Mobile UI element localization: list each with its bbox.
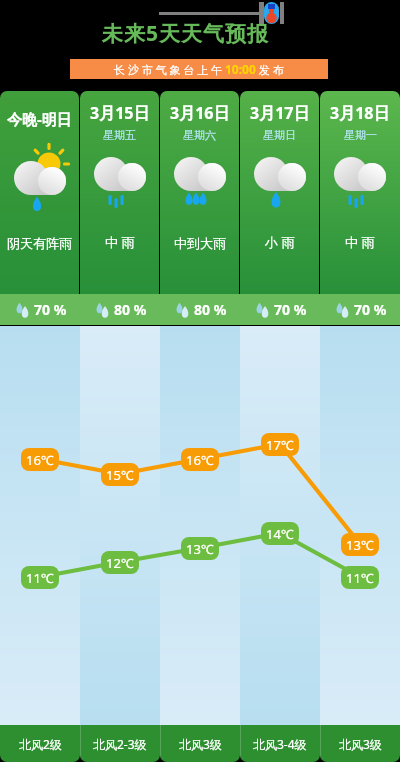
staticText: 3月15日 — [90, 102, 150, 124]
staticText: 3月16日 — [170, 102, 230, 124]
button[interactable]: 11℃ — [341, 566, 379, 589]
button[interactable]: 长 沙 市 气 象 台 上 午 — [70, 59, 328, 79]
button[interactable]: 17℃ — [261, 433, 299, 456]
button[interactable]: 今晚-明日 — [0, 91, 79, 294]
staticText: 70 % — [34, 300, 67, 319]
button[interactable]: 13℃ — [181, 537, 219, 560]
button[interactable]: 11℃ — [21, 566, 59, 589]
staticText: 北风2级 — [19, 736, 62, 752]
staticText: 10:00 — [225, 61, 256, 77]
staticText: 13℃ — [186, 540, 214, 558]
staticText: 中到大雨 — [174, 235, 226, 251]
staticText: 发 布 — [256, 62, 284, 77]
button[interactable]: 北风2-3级 — [80, 725, 160, 762]
button[interactable]: 80 % — [160, 294, 240, 325]
staticText: 中 雨 — [105, 233, 135, 251]
staticText: 中 雨 — [345, 233, 375, 251]
staticText: 今晚-明日 — [7, 109, 72, 129]
staticText: 70 % — [354, 300, 387, 319]
staticText: 北风3级 — [179, 736, 222, 752]
staticText: 14℃ — [266, 525, 294, 543]
button[interactable]: 12℃ — [101, 551, 139, 574]
button[interactable]: 北风2级 — [0, 725, 80, 762]
staticText: 3月17日 — [250, 102, 310, 124]
staticText: 80 % — [194, 300, 227, 319]
button[interactable]: 70 % — [0, 294, 80, 325]
staticText: 未来5天天气预报 — [102, 19, 270, 48]
button[interactable]: 15℃ — [101, 463, 139, 486]
button[interactable]: 13℃ — [341, 533, 379, 556]
staticText: 16℃ — [186, 451, 214, 469]
button[interactable]: 3月18日 — [320, 91, 400, 294]
button[interactable]: 3月15日 — [80, 91, 159, 294]
staticText: 星期一 — [344, 128, 377, 142]
button[interactable]: 16℃ — [181, 448, 219, 471]
button[interactable]: 北风3级 — [320, 725, 400, 762]
staticText: 北风3-4级 — [253, 736, 307, 752]
button[interactable]: 14℃ — [261, 522, 299, 545]
staticText: 11℃ — [26, 569, 54, 587]
button[interactable]: 北风3-4级 — [240, 725, 320, 762]
staticText: 3月18日 — [330, 102, 390, 124]
button[interactable]: 70 % — [320, 294, 400, 325]
button[interactable]: 16℃ — [21, 448, 59, 471]
staticText: 16℃ — [26, 451, 54, 469]
button[interactable]: 3月16日 — [160, 91, 239, 294]
button[interactable]: 70 % — [240, 294, 320, 325]
staticText: 星期六 — [183, 128, 216, 142]
staticText: 80 % — [114, 300, 147, 319]
staticText: 北风3级 — [339, 736, 382, 752]
staticText: 长 沙 市 气 象 台 上 午 — [114, 62, 225, 77]
button[interactable]: 北风3级 — [160, 725, 240, 762]
staticText: 12℃ — [106, 554, 134, 572]
staticText: 17℃ — [266, 436, 294, 454]
staticText: 11℃ — [346, 569, 374, 587]
staticText: 70 % — [274, 300, 307, 319]
staticText: 星期五 — [103, 128, 136, 142]
staticText: 星期日 — [263, 128, 296, 142]
staticText: 北风2-3级 — [93, 736, 147, 752]
staticText: 15℃ — [106, 466, 134, 484]
staticText: 13℃ — [346, 536, 374, 554]
button[interactable]: 80 % — [80, 294, 160, 325]
staticText: 阴天有阵雨 — [7, 235, 72, 251]
button[interactable]: 3月17日 — [240, 91, 319, 294]
staticText: 小 雨 — [265, 233, 295, 251]
